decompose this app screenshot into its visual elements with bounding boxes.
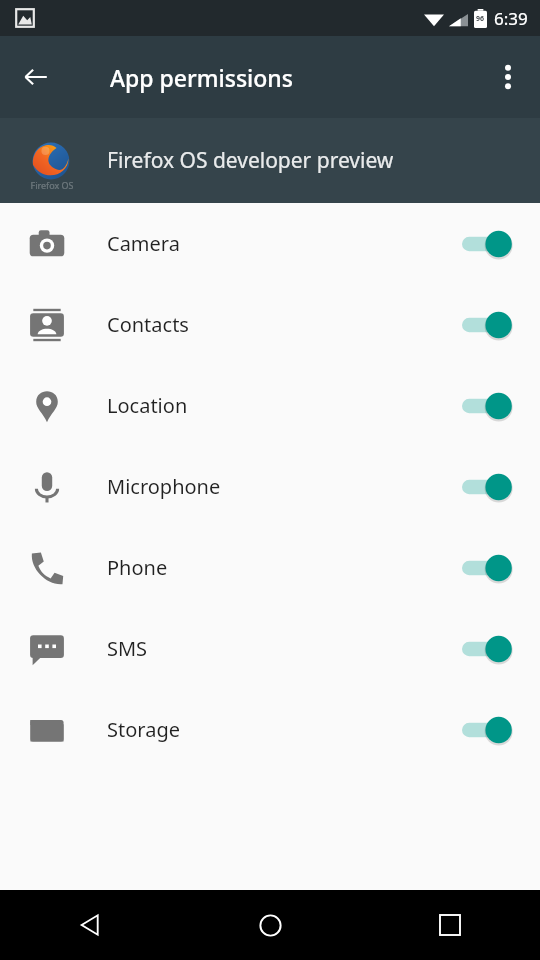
- staticText: Firefox OS developer preview: [107, 146, 394, 175]
- button[interactable]: Recent apps: [360, 890, 540, 960]
- button[interactable]: Camera: [0, 203, 540, 284]
- staticText: Contacts: [107, 311, 189, 338]
- staticText: App permissions: [110, 62, 293, 93]
- button[interactable]: Location: [0, 365, 540, 446]
- button[interactable]: SMS: [0, 608, 540, 689]
- button[interactable]: More options: [484, 53, 532, 101]
- staticText: Phone: [107, 554, 168, 581]
- staticText: SMS: [107, 635, 148, 662]
- staticText: 6:39: [494, 7, 528, 30]
- staticText: 96: [476, 14, 485, 24]
- button[interactable]: Back: [0, 890, 180, 960]
- staticText: Location: [107, 392, 188, 419]
- button[interactable]: Phone: [0, 527, 540, 608]
- button[interactable]: Back: [8, 49, 64, 105]
- staticText: Microphone: [107, 473, 221, 500]
- button[interactable]: Contacts: [0, 284, 540, 365]
- staticText: Firefox OS: [22, 179, 82, 191]
- staticText: Storage: [107, 716, 180, 743]
- staticText: Camera: [107, 230, 180, 257]
- button[interactable]: Home: [180, 890, 360, 960]
- button[interactable]: Firefox OS: [0, 118, 540, 203]
- button[interactable]: Microphone: [0, 446, 540, 527]
- button[interactable]: Storage: [0, 689, 540, 770]
